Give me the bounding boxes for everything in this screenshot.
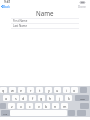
staticText: a	[5, 96, 8, 101]
button[interactable]: o	[71, 87, 78, 93]
button[interactable]: z	[8, 103, 15, 109]
staticText: Done	[78, 5, 86, 8]
button[interactable]: Numbers	[1, 110, 10, 116]
staticText: z	[11, 104, 13, 109]
staticText: n	[54, 104, 57, 109]
staticText: Back	[3, 5, 10, 8]
staticText: x	[20, 104, 22, 109]
staticText: d	[22, 96, 25, 101]
button[interactable]: n	[52, 103, 59, 109]
staticText: 9:41	[4, 0, 11, 4]
button[interactable]: Back	[0, 4, 11, 9]
staticText: 123	[3, 112, 8, 115]
staticText: o	[73, 88, 76, 93]
staticText: q	[2, 88, 5, 93]
staticText: k	[68, 96, 70, 101]
staticText: u	[56, 88, 59, 93]
staticText: next	[80, 97, 85, 100]
button[interactable]: Next	[75, 95, 89, 101]
staticText: i	[66, 88, 67, 93]
button[interactable]: t	[36, 87, 43, 93]
staticText: j	[59, 96, 60, 101]
staticText: h	[49, 96, 52, 101]
button[interactable]: a	[3, 95, 10, 101]
staticText: g	[40, 96, 43, 101]
staticText: t	[39, 88, 41, 93]
button[interactable]: v	[35, 103, 42, 109]
staticText: v	[38, 104, 40, 109]
button[interactable]: k	[65, 95, 72, 101]
button[interactable]: r	[27, 87, 34, 93]
button[interactable]: i	[63, 87, 70, 93]
button[interactable]: c	[26, 103, 33, 109]
staticText: b	[45, 104, 48, 109]
staticText: First Name	[13, 19, 28, 23]
button[interactable]: e	[18, 87, 25, 93]
button[interactable]: q	[0, 87, 7, 93]
button[interactable]: y	[45, 87, 52, 93]
button[interactable]: x	[17, 103, 24, 109]
staticText: r	[30, 88, 32, 93]
button[interactable]: b	[43, 103, 50, 109]
button[interactable]: j	[56, 95, 63, 101]
button[interactable]: w	[9, 87, 16, 93]
staticText: y	[48, 88, 50, 93]
button[interactable]: First Name	[0, 19, 90, 23]
staticText: m	[63, 104, 67, 109]
button[interactable]: u	[54, 87, 61, 93]
button[interactable]: f	[29, 95, 36, 101]
staticText: Last Name	[13, 24, 27, 28]
button[interactable]: d	[20, 95, 27, 101]
staticText: f	[32, 96, 34, 101]
staticText: w	[11, 88, 14, 93]
button[interactable]: g	[38, 95, 45, 101]
button[interactable]: Done	[74, 4, 90, 9]
button[interactable]: Last Name	[0, 24, 90, 28]
staticText: s	[15, 96, 17, 101]
staticText: Name	[36, 9, 54, 16]
staticText: c	[29, 104, 31, 109]
button[interactable]: m	[61, 103, 68, 109]
button[interactable]: h	[47, 95, 54, 101]
staticText: e	[20, 88, 23, 93]
button[interactable]: s	[12, 95, 19, 101]
